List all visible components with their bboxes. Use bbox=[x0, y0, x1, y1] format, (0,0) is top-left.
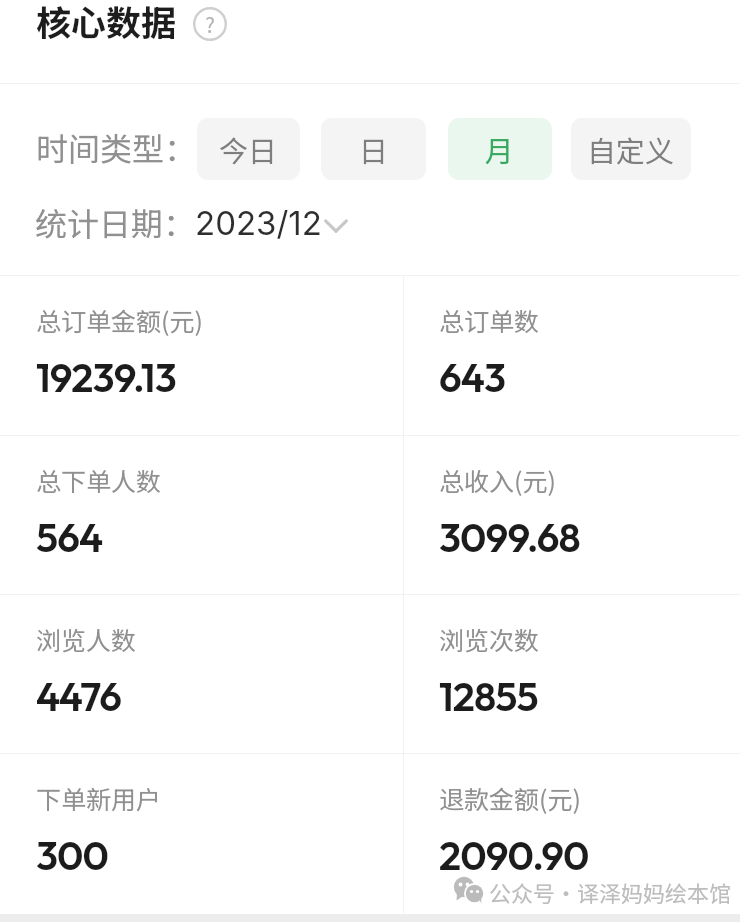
staticText: 总下单人数 bbox=[36, 462, 162, 498]
button[interactable]: Help bbox=[193, 7, 227, 41]
staticText: 2090.90 bbox=[439, 830, 589, 880]
staticText: 时间类型： bbox=[36, 124, 197, 170]
button[interactable]: 总下单人数 bbox=[0, 436, 740, 595]
button[interactable]: 自定义 bbox=[571, 118, 691, 180]
staticText: 12855 bbox=[439, 671, 538, 721]
button[interactable]: 今日 bbox=[197, 118, 300, 180]
button[interactable]: 2023/12 bbox=[195, 203, 351, 243]
staticText: 公众号·译泽妈妈绘本馆 bbox=[489, 876, 732, 908]
staticText: 下单新用户 bbox=[36, 780, 162, 816]
staticText: 4476 bbox=[36, 671, 121, 721]
staticText: 日 bbox=[359, 128, 389, 170]
staticText: 19239.13 bbox=[36, 352, 176, 402]
staticText: 统计日期： bbox=[35, 199, 196, 245]
button[interactable]: 下单新用户 bbox=[0, 754, 740, 913]
staticText: 退款金额(元) bbox=[439, 780, 581, 816]
staticText: 3099.68 bbox=[439, 512, 580, 562]
staticText: 核心数据 bbox=[36, 0, 177, 46]
button[interactable]: 日 bbox=[321, 118, 426, 180]
staticText: 643 bbox=[439, 352, 506, 402]
staticText: 总订单数 bbox=[439, 302, 540, 338]
staticText: 月 bbox=[485, 128, 515, 170]
staticText: 浏览人数 bbox=[36, 621, 137, 657]
staticText: 564 bbox=[36, 512, 103, 562]
staticText: 浏览次数 bbox=[439, 621, 540, 657]
button[interactable]: 浏览人数 bbox=[0, 595, 740, 754]
staticText: 今日 bbox=[219, 128, 278, 170]
staticText: 300 bbox=[36, 830, 109, 880]
button[interactable]: 总订单金额(元) bbox=[0, 276, 740, 435]
staticText: ? bbox=[205, 9, 215, 39]
staticText: 2023/12 bbox=[195, 203, 322, 243]
staticText: 自定义 bbox=[587, 128, 675, 170]
staticText: 总收入(元) bbox=[439, 462, 556, 498]
button[interactable]: 月 bbox=[448, 118, 552, 180]
staticText: 总订单金额(元) bbox=[36, 302, 203, 338]
